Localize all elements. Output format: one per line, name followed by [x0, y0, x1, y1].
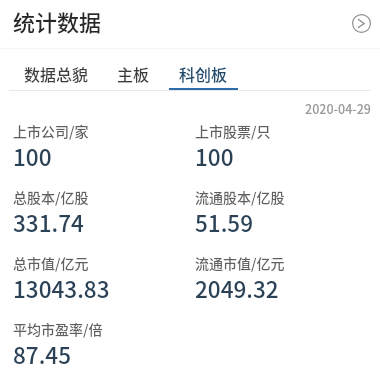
staticText: 数据总貌	[24, 62, 89, 85]
staticText: 总股本/亿股	[13, 187, 89, 207]
button[interactable]: 上市股票/只	[195, 123, 365, 176]
staticText: 总市值/亿元	[13, 253, 89, 273]
button[interactable]: 总股本/亿股	[13, 189, 193, 242]
staticText: 331.74	[13, 206, 84, 239]
button[interactable]: 科创板	[169, 48, 238, 90]
button[interactable]: 流通股本/亿股	[195, 189, 365, 242]
staticText: 13043.83	[13, 272, 110, 305]
staticText: 51.59	[195, 206, 254, 239]
staticText: 2049.32	[195, 272, 279, 305]
staticText: 上市股票/只	[195, 121, 271, 141]
button[interactable]: 平均市盈率/倍	[13, 321, 193, 374]
button[interactable]: 数据总貌	[14, 48, 98, 90]
staticText: 100	[195, 140, 234, 173]
staticText: 主板	[117, 62, 150, 85]
button[interactable]: 主板	[98, 48, 169, 90]
staticText: 2020-04-29	[0, 99, 371, 117]
staticText: 100	[13, 140, 52, 173]
staticText: 87.45	[13, 338, 72, 371]
staticText: 上市公司/家	[13, 121, 89, 141]
button[interactable]: 流通市值/亿元	[195, 255, 365, 308]
staticText: 平均市盈率/倍	[13, 319, 103, 339]
button[interactable]: 上市公司/家	[13, 123, 193, 176]
staticText: 流通市值/亿元	[195, 253, 285, 273]
button[interactable]: More details	[347, 9, 375, 37]
staticText: 统计数据	[13, 5, 102, 37]
staticText: 科创板	[179, 62, 228, 85]
button[interactable]: 总市值/亿元	[13, 255, 193, 308]
staticText: 流通股本/亿股	[195, 187, 285, 207]
